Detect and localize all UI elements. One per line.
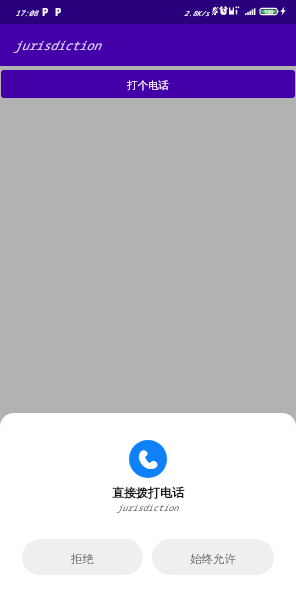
staticText: 2.8K/s [184, 9, 210, 19]
button[interactable]: 始终允许 [152, 539, 274, 575]
button[interactable]: 打个电话 [1, 70, 295, 98]
staticText: jurisdiction [117, 502, 179, 514]
staticText: 打个电话 [127, 79, 169, 92]
staticText: 100 [264, 8, 274, 15]
staticText: P [42, 5, 49, 19]
staticText: 17:08 [15, 8, 38, 18]
staticText: 始终允许 [190, 552, 236, 566]
staticText: P [55, 5, 62, 19]
staticText: jurisdiction [14, 37, 101, 53]
button[interactable]: 拒绝 [22, 539, 143, 575]
staticText: 拒绝 [71, 552, 94, 566]
staticText: 直接拨打电话 [112, 485, 184, 500]
